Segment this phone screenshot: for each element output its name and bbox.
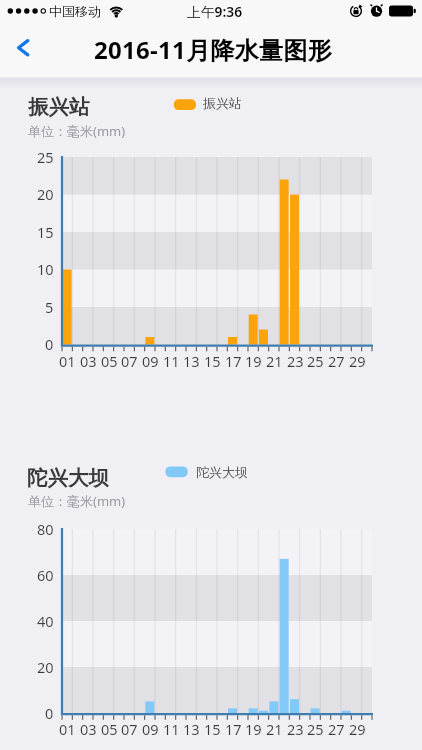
staticText: 07 (121, 719, 138, 738)
staticText: 21 (266, 351, 283, 370)
staticText: 单位：毫米(mm) (28, 122, 126, 140)
staticText: 20 (37, 184, 54, 203)
staticText: 17 (225, 719, 242, 738)
staticText: 13 (183, 719, 200, 738)
staticText: 15 (204, 351, 221, 370)
staticText: 19 (245, 351, 262, 370)
staticText: 29 (349, 719, 366, 738)
staticText: 05 (101, 351, 118, 370)
staticText: 07 (121, 351, 138, 370)
staticText: 0 (45, 703, 54, 722)
staticText: 13 (183, 351, 200, 370)
staticText: 10 (37, 259, 54, 278)
staticText: 振兴站 (203, 95, 242, 111)
staticText: 09 (142, 719, 159, 738)
staticText: 09 (142, 351, 159, 370)
staticText: 25 (37, 147, 54, 166)
staticText: 03 (80, 719, 97, 738)
button[interactable] (161, 457, 261, 479)
staticText: 80 (37, 519, 54, 538)
staticText: 陀兴大坝 (27, 465, 109, 491)
staticText: 5 (45, 297, 54, 316)
staticText: 29 (349, 351, 366, 370)
staticText: 上午9:36 (187, 2, 243, 20)
staticText: 11 (163, 351, 180, 370)
staticText: 23 (287, 351, 304, 370)
staticText: 19 (245, 719, 262, 738)
staticText: 21 (266, 719, 283, 738)
staticText: 20 (37, 657, 54, 676)
staticText: 27 (328, 351, 345, 370)
staticText: 11 (163, 719, 180, 738)
staticText: 01 (59, 351, 76, 370)
staticText: 陀兴大坝 (196, 464, 248, 480)
staticText: 15 (37, 222, 54, 241)
staticText: 单位：毫米(mm) (28, 492, 126, 510)
staticText: 01 (59, 719, 76, 738)
staticText: 17 (225, 351, 242, 370)
staticText: 25 (307, 351, 324, 370)
button[interactable] (170, 95, 262, 117)
staticText: 03 (80, 351, 97, 370)
staticText: 40 (37, 611, 54, 630)
staticText: 60 (37, 565, 54, 584)
staticText: 27 (328, 719, 345, 738)
staticText: 05 (101, 719, 118, 738)
staticText: 0 (45, 334, 54, 353)
staticText: 中国移动 (49, 3, 101, 19)
staticText: 振兴站 (28, 94, 90, 120)
staticText: 23 (287, 719, 304, 738)
staticText: 2016-11月降水量图形 (94, 33, 332, 64)
staticText: 25 (307, 719, 324, 738)
staticText: 15 (204, 719, 221, 738)
button[interactable] (8, 30, 44, 66)
